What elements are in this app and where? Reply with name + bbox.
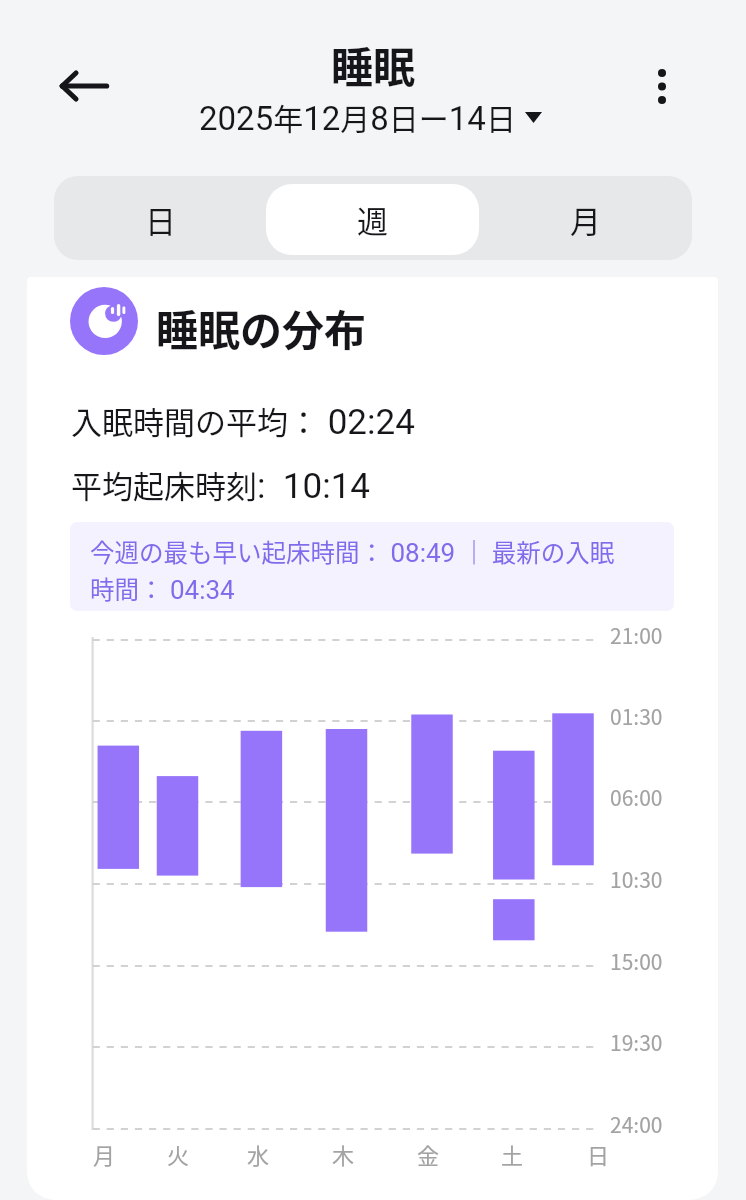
staticText: 金 bbox=[417, 1138, 440, 1170]
staticText: 月 bbox=[93, 1138, 116, 1170]
staticText: 10:30 bbox=[610, 864, 663, 894]
staticText: 24:00 bbox=[610, 1109, 663, 1139]
staticText: 今週の最も早い起床時間： 08:49 ｜ 最新の入眠 時間： 04:34 bbox=[90, 534, 615, 606]
staticText: 06:00 bbox=[610, 782, 663, 812]
staticText: 01:30 bbox=[610, 701, 663, 731]
staticText: 土 bbox=[501, 1138, 524, 1170]
staticText: 木 bbox=[332, 1138, 355, 1170]
staticText: 水 bbox=[247, 1138, 270, 1170]
button[interactable]: 月 bbox=[479, 184, 692, 255]
staticText: 2025年12月8日ー14日 bbox=[199, 95, 516, 138]
staticText: 週 bbox=[357, 197, 388, 242]
staticText: 睡眠の分布 bbox=[156, 297, 367, 358]
button[interactable]: 日 bbox=[54, 184, 266, 255]
staticText: 月 bbox=[570, 197, 601, 242]
staticText: 火 bbox=[167, 1138, 190, 1170]
button[interactable]: Back bbox=[46, 56, 124, 116]
staticText: 日 bbox=[145, 197, 176, 242]
button[interactable]: More options bbox=[638, 55, 686, 117]
staticText: 15:00 bbox=[610, 946, 663, 976]
button[interactable]: 週 bbox=[266, 184, 479, 255]
staticText: 21:00 bbox=[610, 620, 663, 650]
staticText: 日 bbox=[587, 1138, 610, 1170]
staticText: 入眠時間の平均： 02:24 bbox=[71, 398, 415, 443]
staticText: 平均起床時刻: 10:14 bbox=[71, 462, 370, 507]
staticText: 19:30 bbox=[610, 1027, 663, 1057]
staticText: 睡眠 bbox=[331, 34, 416, 95]
